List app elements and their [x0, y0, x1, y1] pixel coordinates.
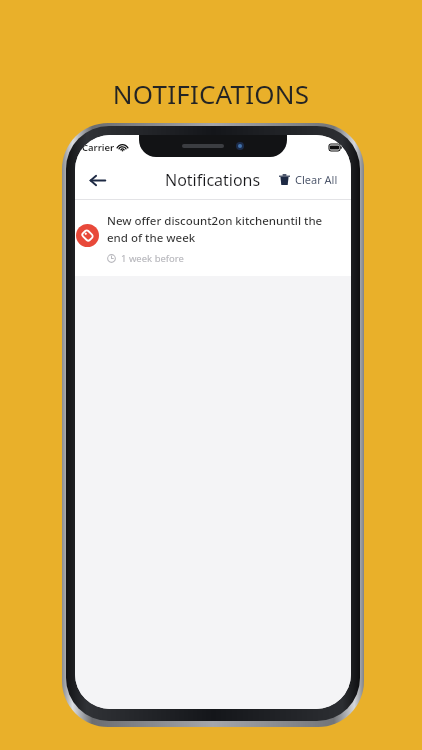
staticText: New offer discount2on kitchenuntil the e… — [107, 213, 341, 245]
button[interactable]: Clear All — [272, 166, 345, 193]
button[interactable]: Back — [80, 163, 114, 197]
staticText: 1 week before — [121, 252, 184, 265]
staticText: Notifications — [165, 169, 261, 191]
staticText: NOTIFICATIONS — [0, 76, 422, 111]
staticText: Clear All — [295, 172, 338, 187]
staticText: Carrier — [82, 141, 115, 154]
button[interactable]: New offer discount2on kitchenuntil the e… — [75, 200, 351, 276]
